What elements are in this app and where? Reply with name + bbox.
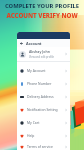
other: Terms of service (65, 146, 67, 148)
other: Phone Number (65, 83, 67, 85)
button[interactable]: Delivery Address (17, 90, 70, 103)
button[interactable]: Back (19, 41, 24, 46)
other: My Cart (65, 122, 67, 124)
button[interactable]: Akshay John (17, 47, 70, 61)
other: My Account (65, 70, 67, 72)
button[interactable]: Terms of service (17, 142, 70, 150)
staticText: My Account (27, 68, 46, 73)
staticText: ACCOUNT VERIFY NOW (0, 11, 84, 19)
other: Notification Setting (65, 109, 67, 111)
staticText: Notification Setting (27, 107, 58, 112)
button[interactable]: My Account (17, 64, 70, 77)
staticText: Account (26, 41, 42, 46)
staticText: Delivery Address (27, 94, 54, 99)
button[interactable]: Phone Number (17, 77, 70, 90)
staticText: View and edit profile (29, 55, 54, 59)
staticText: Terms of service (27, 144, 53, 149)
button[interactable]: Notification Setting (17, 103, 70, 116)
other: Delivery Address (65, 96, 67, 98)
other: Help (65, 135, 67, 137)
staticText: Phone Number (27, 81, 52, 86)
button[interactable]: Help (17, 129, 70, 142)
staticText: Help (27, 133, 35, 138)
button[interactable]: My Cart (17, 116, 70, 129)
other: Edit profile (65, 53, 67, 55)
staticText: COMPLETE YOUR PROFILE (0, 2, 84, 10)
staticText: Akshay John (29, 49, 50, 54)
staticText: My Cart (27, 120, 40, 125)
